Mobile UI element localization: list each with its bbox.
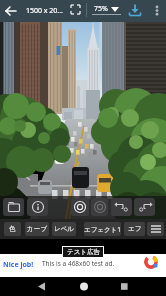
button[interactable] (32, 279, 52, 294)
button[interactable] (74, 279, 94, 294)
button[interactable] (71, 198, 89, 216)
button[interactable]: エフ (124, 222, 145, 236)
button[interactable]: カーブ (25, 222, 49, 236)
button[interactable] (2, 3, 20, 19)
staticText: テスト広告 (67, 248, 100, 256)
staticText: 75% (94, 4, 108, 14)
staticText: レベル (54, 225, 74, 233)
button[interactable]: レベル (52, 222, 76, 236)
staticText: カーブ (27, 225, 47, 233)
button[interactable] (127, 3, 143, 18)
button[interactable] (150, 2, 164, 20)
button[interactable]: Nice job! (0, 254, 166, 277)
button[interactable] (27, 198, 48, 216)
staticText: This is a 468x60 test ad. (42, 259, 115, 268)
button[interactable]: エフェクト1 (84, 222, 121, 236)
staticText: 色 (9, 225, 16, 233)
button[interactable] (3, 198, 24, 216)
button[interactable]: 色 (4, 222, 21, 236)
staticText: エフェクト1 (84, 225, 121, 234)
button[interactable] (91, 198, 108, 216)
staticText: エフ (128, 225, 142, 233)
button[interactable] (134, 198, 155, 216)
staticText: Nice job! (3, 260, 34, 270)
button[interactable] (147, 222, 164, 236)
staticText: 1500 x 20... (26, 6, 63, 16)
button[interactable] (114, 279, 134, 294)
button[interactable] (111, 198, 132, 216)
button[interactable]: 75% (92, 2, 122, 17)
